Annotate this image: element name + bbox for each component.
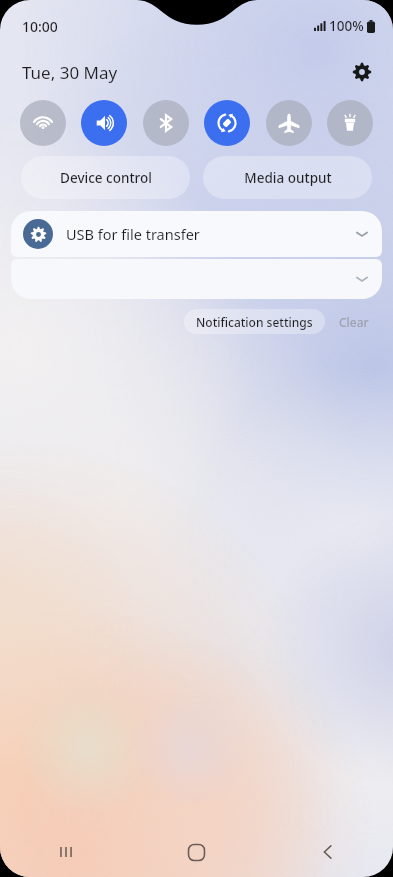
- staticText: Tue, 30 May: [22, 61, 118, 84]
- button[interactable]: Wi-Fi: [20, 100, 66, 146]
- button[interactable]: USB for file transfer: [11, 211, 382, 257]
- button[interactable]: Back: [262, 827, 393, 877]
- button[interactable]: Clear: [331, 309, 377, 334]
- staticText: 10:00: [22, 17, 58, 36]
- staticText: Clear: [339, 314, 369, 330]
- button[interactable]: Settings: [345, 55, 379, 89]
- button[interactable]: [11, 259, 382, 299]
- button[interactable]: Flashlight: [327, 100, 373, 146]
- staticText: 100%: [329, 17, 364, 35]
- staticText: Notification settings: [196, 314, 313, 330]
- button[interactable]: Bluetooth: [143, 100, 189, 146]
- button[interactable]: Auto rotate: [204, 100, 250, 146]
- button[interactable]: Home: [131, 827, 262, 877]
- staticText: Device control: [60, 169, 152, 187]
- button[interactable]: Notification settings: [184, 309, 325, 334]
- staticText: USB for file transfer: [66, 224, 200, 244]
- button[interactable]: Media output: [203, 156, 372, 199]
- button[interactable]: Sound: [81, 100, 127, 146]
- button[interactable]: Device control: [21, 156, 190, 199]
- button[interactable]: Airplane mode: [266, 100, 312, 146]
- staticText: Media output: [244, 169, 332, 187]
- button[interactable]: Recents: [0, 827, 131, 877]
